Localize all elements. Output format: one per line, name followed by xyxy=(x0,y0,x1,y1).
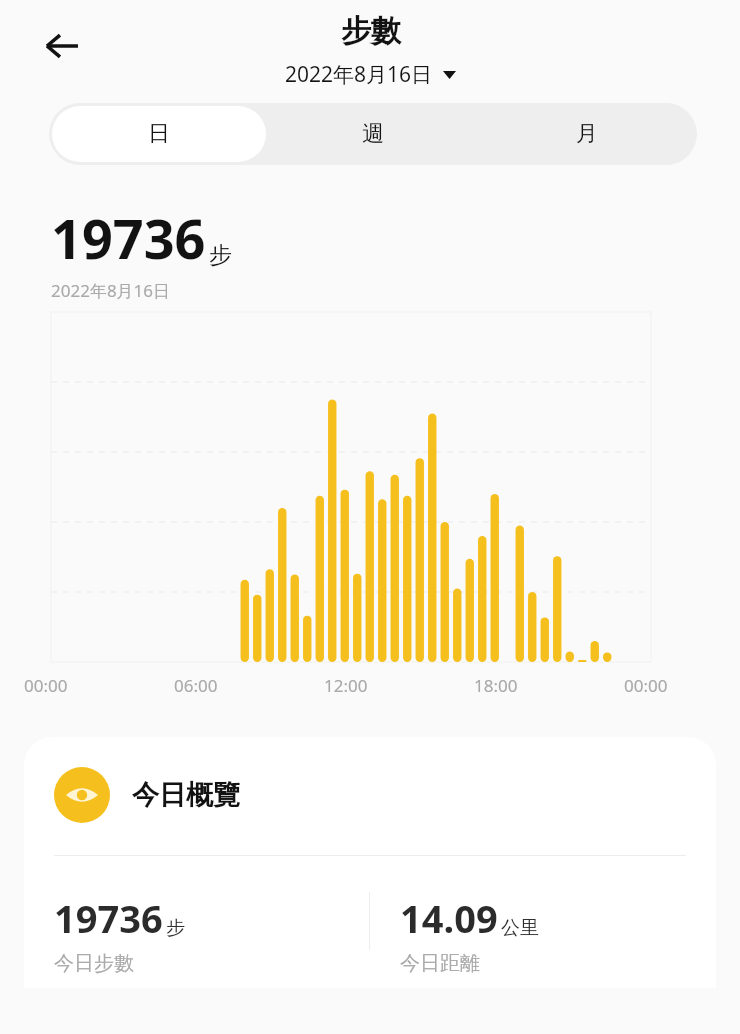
button[interactable]: 2022年8月16日 xyxy=(281,58,460,91)
staticText: 2022年8月16日 xyxy=(51,279,171,302)
staticText: 週 xyxy=(362,120,384,148)
button[interactable]: 日 xyxy=(52,106,266,162)
staticText: 公里 xyxy=(501,916,539,940)
staticText: 18:00 xyxy=(474,674,518,697)
staticText: 今日概覽 xyxy=(132,778,240,812)
staticText: 今日距離 xyxy=(400,951,480,976)
button[interactable]: 月 xyxy=(480,106,694,162)
staticText: 14.09 xyxy=(400,892,498,944)
staticText: 19736 xyxy=(51,201,206,275)
button[interactable]: Back xyxy=(36,20,88,72)
staticText: 12:00 xyxy=(324,674,368,697)
staticText: 步 xyxy=(166,916,185,940)
staticText: 日 xyxy=(148,120,170,148)
staticText: 00:00 xyxy=(624,674,668,697)
staticText: 19736 xyxy=(54,892,163,944)
staticText: 步數 xyxy=(341,12,401,50)
staticText: 2022年8月16日 xyxy=(285,60,433,89)
staticText: 步 xyxy=(209,241,232,270)
staticText: 月 xyxy=(576,120,598,148)
button[interactable]: 今日概覽 xyxy=(24,737,716,988)
staticText: 06:00 xyxy=(174,674,218,697)
staticText: 00:00 xyxy=(24,674,68,697)
button[interactable]: 週 xyxy=(266,106,480,162)
staticText: 今日步數 xyxy=(54,951,134,976)
